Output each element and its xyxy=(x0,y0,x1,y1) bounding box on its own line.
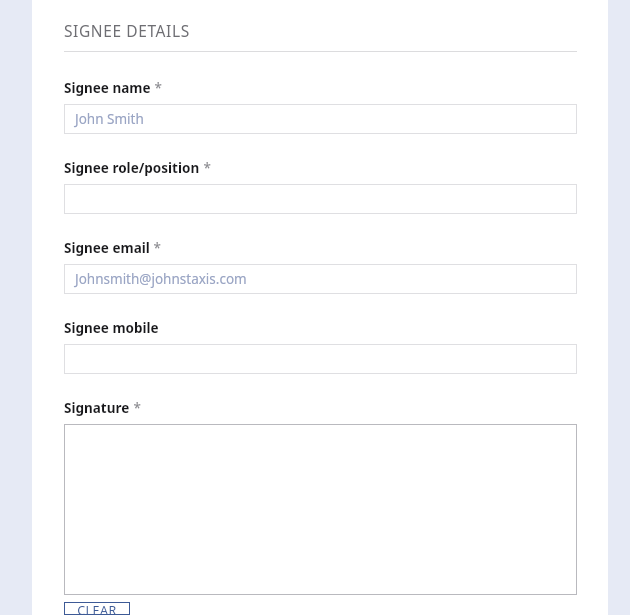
staticText: John Smith xyxy=(75,110,144,128)
staticText: * xyxy=(150,239,161,257)
button[interactable]: CLEAR xyxy=(64,602,130,615)
staticText: * xyxy=(130,399,141,417)
staticText: Signee email xyxy=(64,239,150,257)
staticText: Signee role/position xyxy=(64,159,200,177)
staticText: Signature xyxy=(64,399,130,417)
staticText: SIGNEE DETAILS xyxy=(64,20,190,41)
staticText: * xyxy=(200,159,211,177)
button[interactable] xyxy=(64,344,577,374)
staticText: Signee mobile xyxy=(64,319,159,337)
staticText: Signee name xyxy=(64,79,151,97)
staticText: * xyxy=(151,79,162,97)
button[interactable]: Signature drawing area xyxy=(64,424,577,595)
staticText: CLEAR xyxy=(77,602,117,615)
button[interactable]: John Smith xyxy=(64,104,577,134)
button[interactable]: Johnsmith@johnstaxis.com xyxy=(64,264,577,294)
staticText: Johnsmith@johnstaxis.com xyxy=(75,270,247,288)
button[interactable] xyxy=(64,184,577,214)
